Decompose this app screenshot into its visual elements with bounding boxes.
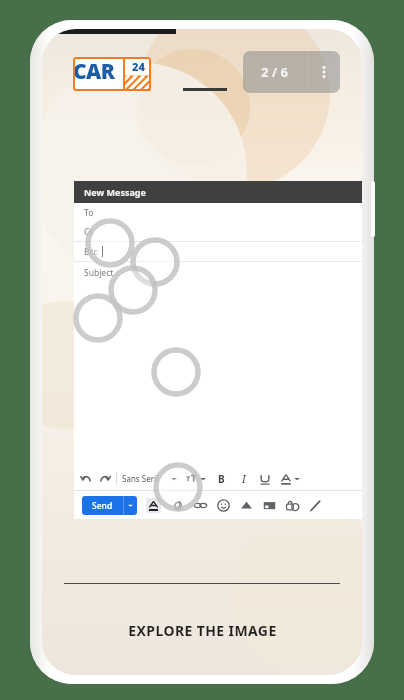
button[interactable]: To	[74, 203, 362, 222]
staticText: Bcc	[84, 246, 98, 258]
button[interactable]: Insert link	[194, 499, 207, 512]
button[interactable]: Attach file	[171, 499, 184, 512]
button[interactable]	[186, 473, 206, 484]
button[interactable]: Insert emoji	[217, 499, 230, 512]
button[interactable]: Formatting options	[146, 498, 161, 513]
button[interactable]: Italic	[238, 472, 249, 486]
button[interactable]: Send	[82, 496, 137, 515]
staticText: 24	[132, 59, 145, 74]
button[interactable]: Insert signature	[309, 499, 322, 512]
button[interactable]: EXPLORE THE IMAGE	[42, 613, 362, 647]
button[interactable]: New Message	[74, 181, 362, 203]
button[interactable]: Sans Serif	[122, 473, 177, 484]
button[interactable]: Confidential mode	[286, 499, 299, 512]
button[interactable]: Undo	[80, 472, 93, 485]
button[interactable]: Bcc	[74, 242, 362, 261]
staticText: 2 / 6	[261, 63, 289, 81]
staticText: New Message	[84, 186, 146, 198]
button[interactable]: Subject	[74, 262, 362, 284]
button[interactable]: Redo	[98, 472, 111, 485]
button[interactable]: Underline	[260, 473, 270, 485]
staticText: Subject	[84, 267, 114, 279]
staticText: CARS	[73, 57, 123, 91]
button[interactable]: Bold	[216, 472, 227, 486]
button[interactable]: More options	[308, 51, 340, 93]
button[interactable]: Cc	[74, 222, 362, 241]
staticText: Send	[92, 500, 113, 512]
staticText: B	[218, 472, 225, 486]
button[interactable]: Insert photo	[263, 499, 276, 512]
button[interactable]: Insert from Drive	[240, 499, 253, 512]
button[interactable]: CARS24 logo	[73, 57, 151, 91]
staticText: To	[84, 207, 94, 219]
staticText: Cc	[84, 226, 94, 238]
staticText: Sans Serif	[122, 473, 159, 484]
button[interactable]: Text color	[281, 473, 300, 485]
staticText: I	[242, 472, 246, 486]
button[interactable]: 2 / 6	[243, 51, 307, 93]
staticText: EXPLORE THE IMAGE	[128, 621, 277, 640]
